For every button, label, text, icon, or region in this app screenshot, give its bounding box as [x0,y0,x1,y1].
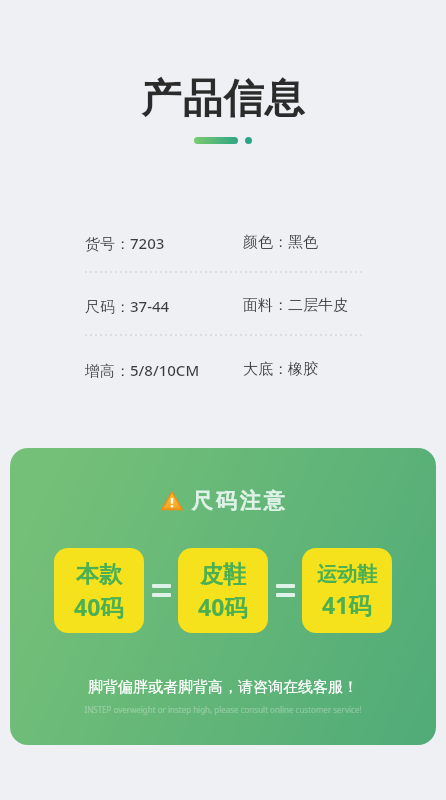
staticText: 尺码注意 [190,488,286,514]
button[interactable]: 尺码：37-44 [85,296,361,316]
staticText: 40码 [198,591,248,622]
button[interactable]: 货号：7203 [85,233,361,253]
button[interactable]: 皮鞋 [178,548,268,633]
staticText: 颜色：黑色 [243,233,318,252]
button[interactable]: 运动鞋 [302,548,392,633]
button[interactable]: Warning [10,448,436,745]
staticText: 产品信息 [141,73,305,123]
staticText: INSTEP overweight or instep high, please… [84,704,362,715]
other: Warning [161,490,183,512]
staticText: 40码 [74,591,124,622]
staticText: 本款 [76,560,122,589]
staticText: 脚背偏胖或者脚背高，请咨询在线客服！ [88,678,358,697]
button[interactable]: 增高：5/8/10CM [85,360,361,380]
staticText: 运动鞋 [317,562,377,587]
staticText: 大底：橡胶 [243,360,318,379]
button[interactable]: 本款 [54,548,144,633]
staticText: 皮鞋 [200,560,246,589]
staticText: 尺码：37-44 [85,296,170,316]
staticText: 货号：7203 [85,233,165,253]
staticText: 41码 [322,589,372,620]
staticText: 面料：二层牛皮 [243,296,348,315]
staticText: 增高：5/8/10CM [85,360,200,380]
